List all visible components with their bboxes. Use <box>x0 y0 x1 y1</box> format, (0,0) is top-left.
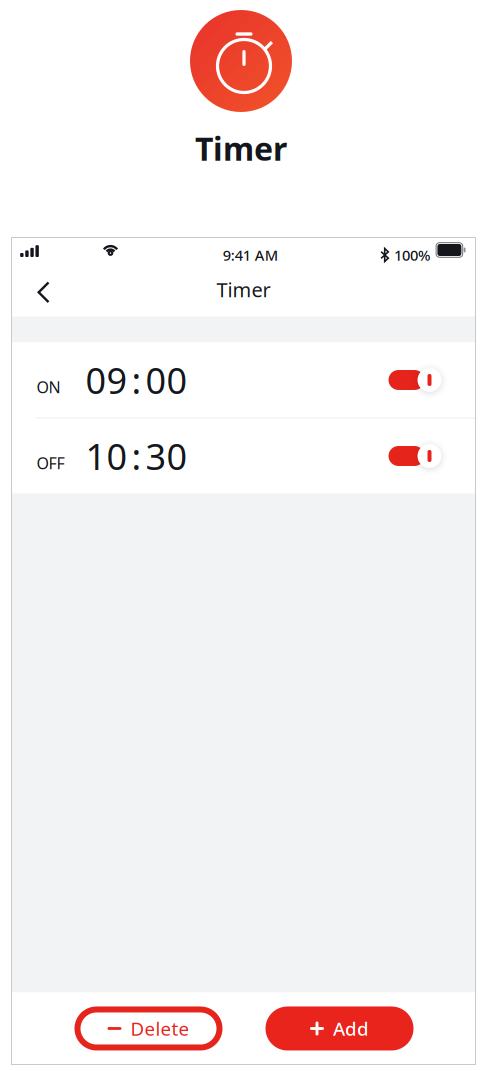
button[interactable]: Add <box>265 1006 413 1050</box>
staticText: Add <box>333 1016 369 1041</box>
staticText: Delete <box>130 1016 189 1041</box>
staticText: 09 : 00 <box>85 356 187 404</box>
button[interactable]: ON <box>11 342 475 417</box>
staticText: Timer <box>195 127 287 169</box>
button[interactable]: Delete <box>74 1006 222 1050</box>
button[interactable]: Back <box>28 272 58 316</box>
staticText: 9:41 AM <box>223 245 278 265</box>
staticText: OFF <box>36 452 64 474</box>
staticText: Timer <box>216 276 270 303</box>
staticText: ON <box>36 376 60 398</box>
staticText: 10 : 30 <box>85 432 187 480</box>
button[interactable]: OFF <box>11 418 475 493</box>
staticText: 100% <box>394 245 430 265</box>
